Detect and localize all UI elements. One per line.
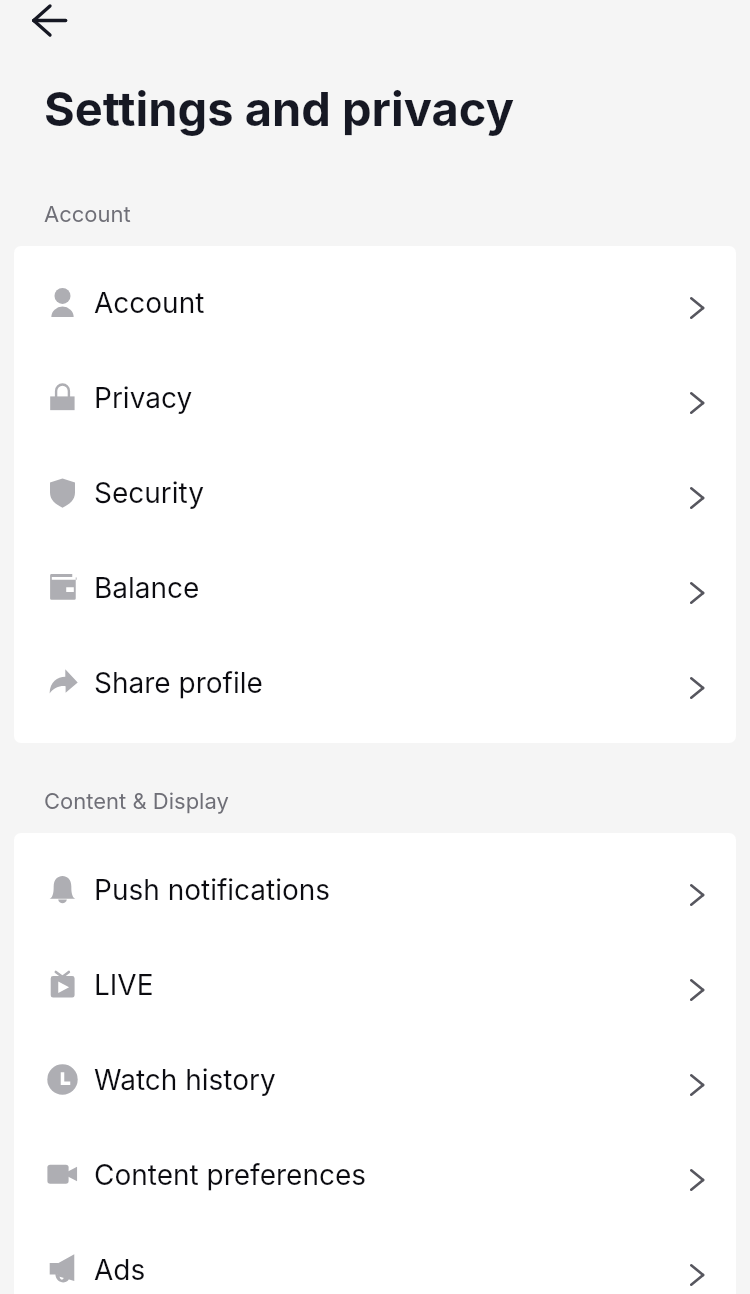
button[interactable]: Share profile <box>14 635 736 730</box>
button[interactable]: Balance <box>14 540 736 635</box>
button[interactable]: Push notifications <box>14 842 736 937</box>
button[interactable]: Account <box>14 255 736 350</box>
staticText: Ads <box>94 1253 146 1287</box>
staticText: Push notifications <box>94 873 331 907</box>
button[interactable]: Ads <box>14 1222 736 1294</box>
button[interactable]: Back <box>14 0 76 54</box>
button[interactable]: LIVE <box>14 937 736 1032</box>
staticText: Privacy <box>94 381 193 415</box>
staticText: Share profile <box>94 666 263 700</box>
staticText: LIVE <box>94 968 154 1002</box>
staticText: Security <box>94 476 205 510</box>
button[interactable]: Security <box>14 445 736 540</box>
staticText: Account <box>94 286 205 320</box>
staticText: Content & Display <box>44 788 229 815</box>
button[interactable]: Content preferences <box>14 1127 736 1222</box>
staticText: Content preferences <box>94 1158 367 1192</box>
staticText: Settings and privacy <box>44 80 514 137</box>
staticText: Watch history <box>94 1063 276 1097</box>
button[interactable]: Privacy <box>14 350 736 445</box>
staticText: Account <box>44 201 131 228</box>
button[interactable]: Watch history <box>14 1032 736 1127</box>
staticText: Balance <box>94 571 200 605</box>
